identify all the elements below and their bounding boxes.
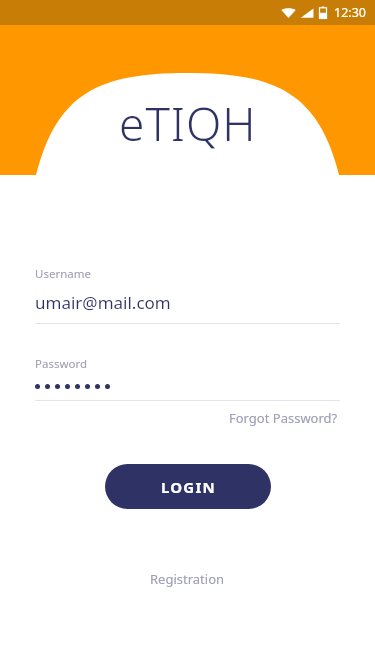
button[interactable]: Registration — [140, 566, 235, 592]
staticText: LOGIN — [161, 477, 216, 497]
staticText: Forgot Password? — [229, 409, 338, 427]
staticText: Username — [35, 266, 91, 282]
staticText: 12:30 — [334, 4, 366, 21]
staticText: Registration — [150, 570, 225, 588]
button[interactable]: Forgot Password? — [227, 406, 340, 430]
staticText: eTIQH — [119, 92, 257, 155]
button[interactable]: LOGIN — [105, 464, 271, 509]
staticText: umair@mail.com — [35, 291, 171, 314]
staticText: Password — [35, 356, 88, 372]
